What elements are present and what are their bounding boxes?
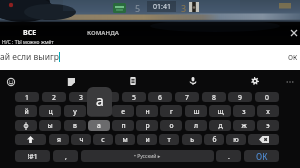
button[interactable]: КОМАНДА	[86, 27, 119, 38]
button[interactable]: т	[159, 134, 179, 145]
button[interactable]: Settings	[247, 73, 263, 89]
button[interactable]: и	[137, 134, 157, 145]
button[interactable]: Voice input	[185, 73, 201, 89]
button[interactable]: л	[185, 120, 207, 131]
staticText: 5	[132, 93, 136, 102]
button[interactable]: ,	[53, 150, 78, 162]
button[interactable]: е	[112, 105, 134, 117]
staticText: ВСЕ	[23, 28, 37, 38]
staticText: ш	[193, 107, 200, 116]
button[interactable]: д	[209, 120, 231, 131]
button[interactable]: !#1	[15, 150, 50, 162]
other: Key preview а	[87, 87, 112, 116]
button[interactable]: 4	[95, 92, 119, 102]
button[interactable]: 7	[175, 92, 199, 102]
button[interactable]: з	[233, 105, 255, 117]
staticText: в	[73, 121, 77, 130]
button[interactable]: к	[88, 105, 110, 117]
staticText: ц	[48, 107, 53, 116]
button[interactable]: Clipboard	[125, 73, 141, 89]
button[interactable]: ч	[71, 134, 91, 145]
button[interactable]: х	[257, 105, 279, 117]
button[interactable]: ОК	[244, 150, 279, 162]
staticText: КОМАНДА	[87, 29, 119, 37]
button[interactable]: .	[216, 150, 241, 162]
staticText: ю	[233, 135, 239, 144]
staticText: б	[212, 135, 217, 144]
staticText: ф	[23, 121, 29, 130]
button[interactable]: Space	[81, 150, 214, 162]
button[interactable]: Shift	[15, 134, 46, 145]
button[interactable]: 1	[15, 92, 39, 102]
button[interactable]: ю	[226, 134, 246, 145]
button[interactable]: 0	[255, 92, 279, 102]
button[interactable]: й	[15, 105, 37, 117]
button[interactable]: ш	[185, 105, 207, 117]
staticText: щ	[217, 107, 224, 116]
staticText: я	[57, 135, 61, 144]
button[interactable]: ж	[233, 120, 255, 131]
staticText: й	[24, 107, 29, 116]
staticText: ь	[190, 135, 194, 144]
staticText: г	[170, 107, 173, 116]
button[interactable]: г	[160, 105, 182, 117]
button[interactable]: 6	[148, 92, 172, 102]
staticText: и	[145, 135, 150, 144]
staticText: 6	[158, 93, 162, 102]
button[interactable]: ь	[182, 134, 202, 145]
button[interactable]: ОК	[288, 45, 298, 70]
staticText: 7	[185, 93, 189, 102]
button[interactable]: у	[64, 105, 86, 117]
staticText: 5	[135, 2, 141, 14]
staticText: т	[167, 135, 171, 144]
button[interactable]: п	[112, 120, 134, 131]
button[interactable]: More options	[282, 74, 298, 90]
staticText: ай если выигр	[0, 51, 59, 63]
staticText: о	[169, 121, 174, 130]
staticText: 3	[181, 2, 187, 14]
button[interactable]: б	[204, 134, 224, 145]
button[interactable]: 5	[122, 92, 146, 102]
button[interactable]: Emoji	[3, 74, 19, 90]
staticText: з	[242, 107, 246, 116]
button[interactable]: 8	[202, 92, 226, 102]
button[interactable]: щ	[209, 105, 231, 117]
button[interactable]: 3	[69, 92, 93, 102]
button[interactable]: 9	[228, 92, 252, 102]
staticText: ж	[241, 121, 247, 130]
staticText: ,	[65, 152, 67, 161]
staticText: н	[145, 107, 150, 116]
staticText: ч	[79, 135, 84, 144]
button[interactable]: ф	[15, 120, 37, 131]
staticText: !#1	[27, 152, 38, 161]
button[interactable]: ы	[39, 120, 61, 131]
staticText: э	[266, 121, 270, 130]
staticText: л	[194, 121, 198, 130]
button[interactable]: Stickers	[63, 74, 79, 90]
button[interactable]: э	[257, 120, 279, 131]
button[interactable]: ц	[39, 105, 61, 117]
button[interactable]: с	[93, 134, 113, 145]
button[interactable]: ВСЕ	[17, 27, 42, 38]
staticText: д	[218, 121, 223, 130]
staticText: 3	[79, 93, 83, 102]
button[interactable]: р	[136, 120, 158, 131]
staticText: 0	[265, 93, 269, 102]
button[interactable]: в	[64, 120, 86, 131]
staticText: ОК	[288, 53, 298, 62]
button[interactable]: а	[88, 120, 110, 131]
button[interactable]: 2	[42, 92, 66, 102]
staticText: ы	[47, 121, 53, 130]
button[interactable]: н	[136, 105, 158, 117]
button[interactable]: о	[160, 120, 182, 131]
button[interactable]: я	[49, 134, 69, 145]
staticText: е	[121, 107, 125, 116]
button[interactable]: Close chat	[288, 27, 300, 39]
button[interactable]: м	[115, 134, 135, 145]
button[interactable]: Backspace	[248, 134, 279, 145]
staticText: 8	[212, 93, 216, 102]
staticText: х	[266, 107, 270, 116]
staticText: 2	[52, 93, 56, 102]
